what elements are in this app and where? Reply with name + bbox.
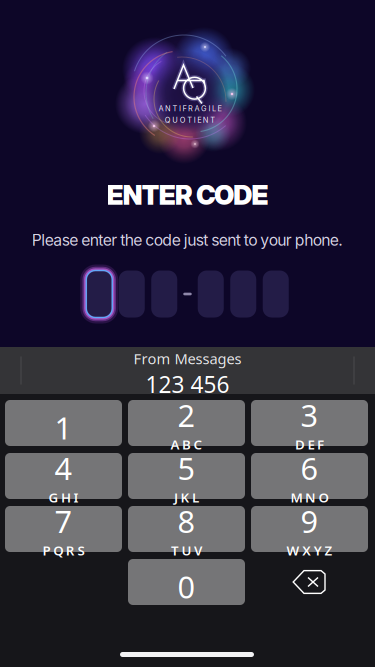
staticText: I: [194, 115, 196, 124]
staticText: A: [194, 104, 199, 113]
staticText: R: [66, 541, 75, 559]
button[interactable]: 4: [5, 453, 122, 499]
staticText: L: [192, 488, 199, 506]
staticText: T: [171, 541, 179, 559]
staticText: X: [302, 541, 311, 559]
button[interactable]: 1: [5, 400, 122, 446]
staticText: N: [165, 104, 171, 113]
staticText: V: [194, 541, 202, 559]
staticText: W: [287, 541, 300, 559]
staticText: Q: [53, 541, 63, 559]
staticText: C: [194, 435, 203, 453]
staticText: From Messages: [133, 349, 241, 368]
button[interactable]: Delete: [251, 559, 368, 605]
staticText: I: [208, 104, 210, 113]
staticText: A: [158, 104, 163, 113]
staticText: F: [317, 435, 324, 453]
staticText: Z: [324, 541, 332, 559]
staticText: 3: [300, 395, 318, 435]
staticText: G: [201, 104, 207, 113]
staticText: B: [182, 435, 191, 453]
button[interactable]: From Messages: [47, 347, 327, 394]
staticText: D: [295, 435, 305, 453]
staticText: T: [187, 115, 192, 124]
staticText: I: [74, 488, 79, 506]
staticText: M: [290, 488, 302, 506]
staticText: H: [61, 488, 71, 506]
staticText: O: [319, 488, 329, 506]
staticText: 9: [300, 501, 318, 541]
staticText: E: [217, 104, 221, 113]
staticText: N: [305, 488, 316, 506]
staticText: Q: [165, 115, 171, 124]
staticText: E: [307, 435, 314, 453]
button[interactable]: 2: [128, 400, 245, 446]
staticText: N: [203, 115, 209, 124]
staticText: 0: [177, 566, 195, 607]
button[interactable]: 6: [251, 453, 368, 499]
staticText: ENTER CODE: [107, 179, 268, 211]
staticText: 2: [177, 395, 195, 435]
button[interactable]: 7: [5, 506, 122, 552]
staticText: G: [48, 488, 58, 506]
staticText: F: [182, 104, 186, 113]
button[interactable]: 3: [251, 400, 368, 446]
staticText: 5: [177, 448, 195, 488]
staticText: T: [210, 115, 215, 124]
staticText: P: [43, 541, 51, 559]
staticText: T: [172, 104, 177, 113]
staticText: U: [181, 541, 191, 559]
staticText: U: [172, 115, 178, 124]
staticText: 123 456: [145, 369, 229, 399]
staticText: E: [197, 115, 201, 124]
button[interactable]: 5: [128, 453, 245, 499]
staticText: Y: [314, 541, 322, 559]
staticText: 6: [300, 448, 318, 488]
staticText: 8: [177, 501, 195, 541]
staticText: S: [77, 541, 84, 559]
staticText: 4: [54, 448, 72, 488]
staticText: Please enter the code just sent to your …: [32, 230, 343, 249]
staticText: I: [179, 104, 181, 113]
staticText: J: [174, 488, 178, 506]
staticText: R: [188, 104, 193, 113]
staticText: O: [180, 115, 186, 124]
staticText: 1: [54, 407, 72, 448]
staticText: K: [180, 488, 189, 506]
staticText: 7: [54, 501, 72, 541]
button[interactable]: 0: [128, 559, 245, 605]
button[interactable]: 8: [128, 506, 245, 552]
button[interactable]: 9: [251, 506, 368, 552]
staticText: A: [170, 435, 179, 453]
staticText: L: [212, 104, 216, 113]
